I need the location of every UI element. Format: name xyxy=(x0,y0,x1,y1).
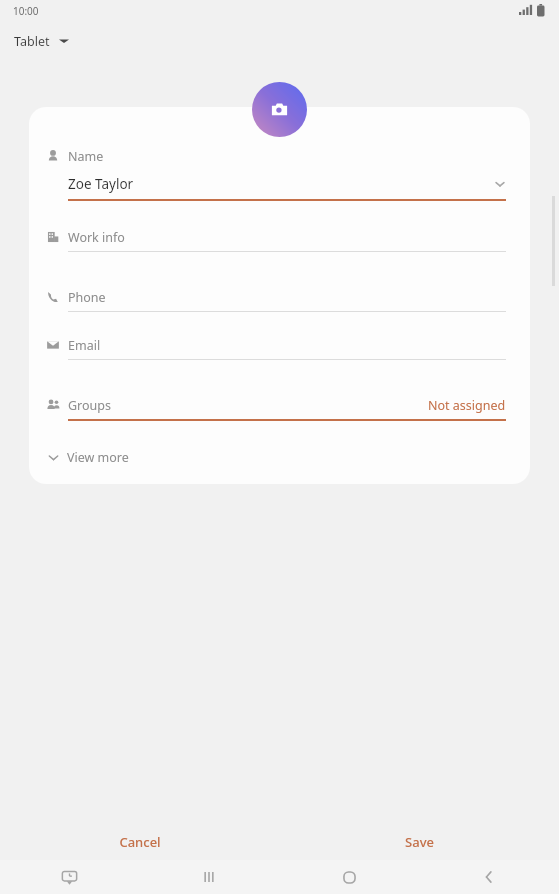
button[interactable]: Add contact photo xyxy=(252,82,307,137)
staticText: Not assigned xyxy=(428,397,506,414)
button[interactable]: Back xyxy=(419,860,559,894)
button[interactable]: Cancel xyxy=(97,828,183,856)
button[interactable]: View more xyxy=(29,441,530,473)
button[interactable]: Phone xyxy=(29,283,530,312)
staticText: View more xyxy=(67,449,129,466)
staticText: Cancel xyxy=(119,833,161,851)
staticText: Zoe Taylor xyxy=(68,175,134,193)
staticText: Name xyxy=(68,148,104,165)
button[interactable]: Tablet xyxy=(12,30,71,52)
staticText: Phone xyxy=(68,289,106,306)
staticText: Tablet xyxy=(14,33,50,50)
button[interactable]: Name xyxy=(29,143,530,201)
button[interactable]: Groups xyxy=(29,391,530,421)
staticText: Save xyxy=(405,833,434,851)
button[interactable]: Email xyxy=(29,331,530,360)
button[interactable]: Save xyxy=(383,828,456,856)
staticText: Email xyxy=(68,337,101,354)
button[interactable]: Work info xyxy=(29,223,530,252)
staticText: Groups xyxy=(68,397,111,414)
staticText: 10:00 xyxy=(13,4,39,18)
staticText: Work info xyxy=(68,229,125,246)
button[interactable]: Home xyxy=(279,860,419,894)
button[interactable]: Recent apps xyxy=(139,860,279,894)
button[interactable]: Hide keyboard xyxy=(0,860,139,894)
